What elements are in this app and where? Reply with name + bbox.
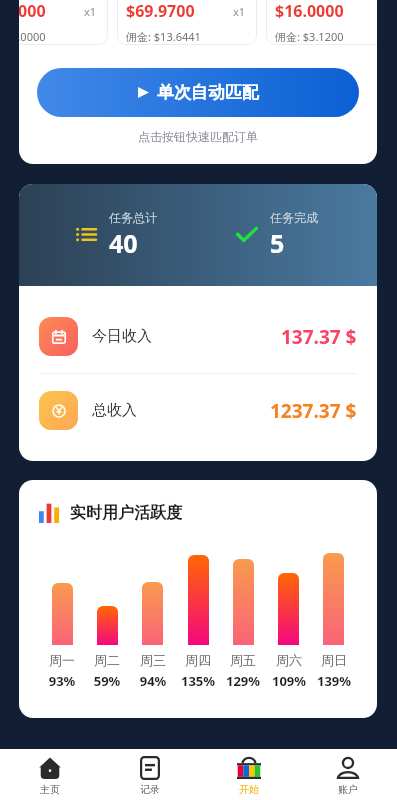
staticText: 佣金: $13.6441 <box>126 29 201 44</box>
staticText: x1 <box>233 4 246 19</box>
staticText: 今日收入 <box>92 327 152 346</box>
staticText: 佣金: $7.0000 <box>19 29 46 44</box>
button[interactable]: 主页 <box>0 749 100 800</box>
staticText: 59% <box>86 672 128 690</box>
staticText: 93% <box>41 672 83 690</box>
button[interactable]: 记录 <box>100 749 199 800</box>
staticText: 单次自动匹配 <box>157 82 259 103</box>
other: 账户 <box>336 757 360 779</box>
staticText: x1 <box>84 4 97 19</box>
button[interactable]: 总收入 <box>19 374 377 447</box>
staticText: 周四 <box>177 652 219 668</box>
staticText: 周日 <box>313 652 355 668</box>
staticText: 主页 <box>40 783 60 796</box>
staticText: 实时用户活跃度 <box>70 503 182 523</box>
staticText: 佣金: $3.1200 <box>275 29 344 44</box>
staticText: 任务总计 <box>109 210 157 225</box>
staticText: 139% <box>313 672 355 690</box>
staticText: $69.9700 <box>126 0 195 22</box>
staticText: 周二 <box>86 652 128 668</box>
button[interactable]: $69.9700 <box>117 0 257 45</box>
staticText: 1237.37 $ <box>270 398 357 424</box>
staticText: 周三 <box>132 652 174 668</box>
staticText: 任务完成 <box>270 210 318 225</box>
other: 任务总计 <box>76 228 96 241</box>
button[interactable]: 今日收入 <box>19 300 377 373</box>
staticText: 记录 <box>140 783 160 796</box>
staticText: 总收入 <box>92 401 137 420</box>
staticText: 周五 <box>222 652 264 668</box>
other: 任务完成 <box>237 228 257 241</box>
staticText: 点击按钮快速匹配订单 <box>19 129 377 144</box>
staticText: 5 <box>270 226 285 260</box>
button[interactable]: $34.0000 <box>19 0 108 45</box>
staticText: 周六 <box>268 652 310 668</box>
staticText: $16.0000 <box>275 0 344 22</box>
button[interactable]: 开始 <box>199 749 298 800</box>
button[interactable]: 单次自动匹配 <box>37 68 359 117</box>
staticText: 109% <box>268 672 310 690</box>
staticText: 40 <box>109 226 138 260</box>
staticText: $34.0000 <box>19 0 46 22</box>
staticText: 94% <box>132 672 174 690</box>
button[interactable]: 账户 <box>298 749 397 800</box>
staticText: 账户 <box>338 783 358 796</box>
staticText: 周一 <box>41 652 83 668</box>
staticText: 129% <box>222 672 264 690</box>
other: 主页 <box>38 757 62 779</box>
staticText: 137.37 $ <box>281 324 357 350</box>
other: 记录 <box>138 757 162 779</box>
other: 开始 <box>237 757 261 779</box>
staticText: 开始 <box>239 783 259 796</box>
staticText: 135% <box>177 672 219 690</box>
button[interactable]: $16.0000 <box>266 0 377 45</box>
